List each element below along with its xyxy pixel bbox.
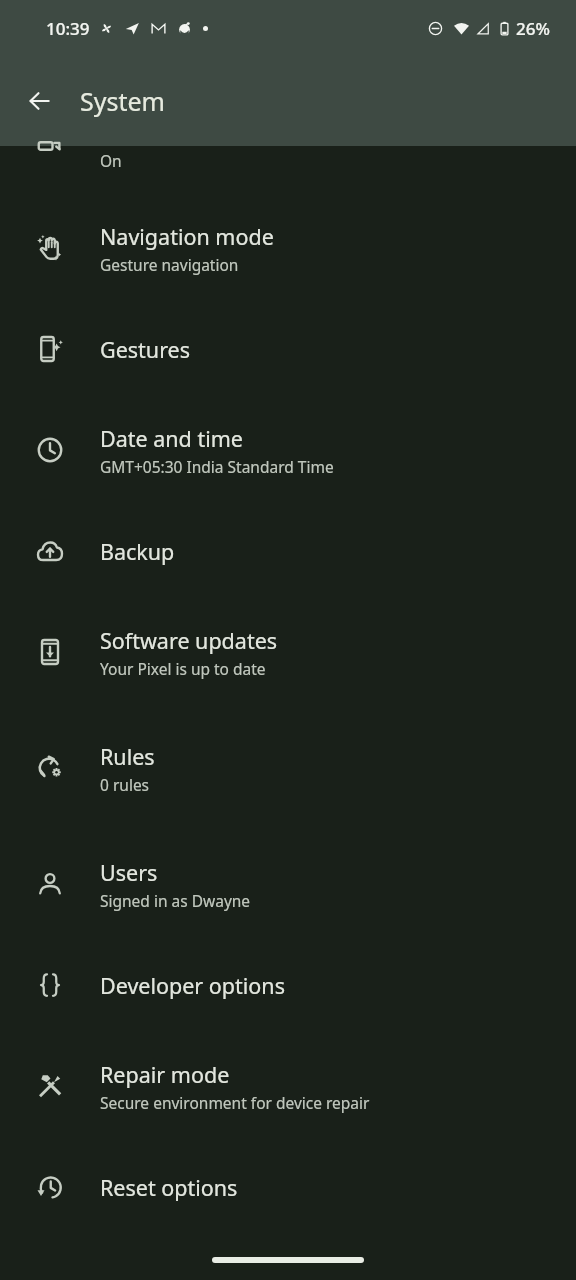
staticText: Backup [100, 537, 175, 566]
staticText: Your Pixel is up to date [100, 658, 266, 679]
staticText: Signed in as Dwayne [100, 890, 251, 911]
button[interactable]: Gestures [0, 306, 576, 392]
button[interactable]: Users [0, 826, 576, 942]
staticText: Users [100, 858, 158, 887]
button[interactable]: Back [0, 56, 80, 146]
staticText: Gesture navigation [100, 254, 239, 275]
staticText: Software updates [100, 626, 278, 655]
button[interactable]: Rules [0, 710, 576, 826]
staticText: GMT+05:30 India Standard Time [100, 456, 334, 477]
button[interactable]: On [0, 146, 576, 190]
staticText: On [100, 150, 122, 171]
button[interactable]: Date and time [0, 392, 576, 508]
staticText: Gestures [100, 335, 190, 364]
staticText: Rules [100, 742, 155, 771]
button[interactable]: Reset options [0, 1144, 576, 1230]
staticText: Secure environment for device repair [100, 1092, 370, 1113]
staticText: 0 rules [100, 774, 150, 795]
staticText: System [80, 84, 165, 118]
button[interactable]: Repair mode [0, 1028, 576, 1144]
staticText: Repair mode [100, 1060, 230, 1089]
button[interactable]: Navigation mode [0, 190, 576, 306]
staticText: 26% [516, 17, 550, 40]
staticText: Reset options [100, 1173, 238, 1202]
button[interactable]: Developer options [0, 942, 576, 1028]
button[interactable]: Backup [0, 508, 576, 594]
staticText: Date and time [100, 424, 243, 453]
staticText: 10:39 [46, 17, 90, 40]
button[interactable]: Software updates [0, 594, 576, 710]
staticText: Developer options [100, 971, 285, 1000]
staticText: Navigation mode [100, 222, 274, 251]
